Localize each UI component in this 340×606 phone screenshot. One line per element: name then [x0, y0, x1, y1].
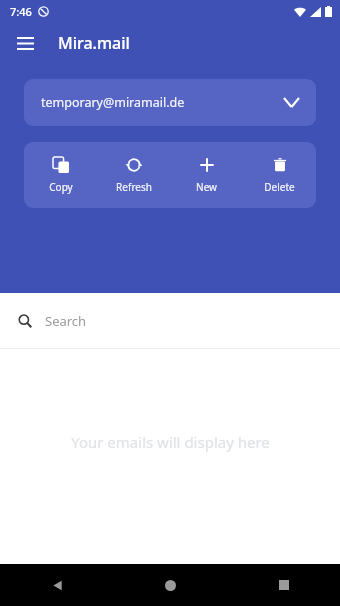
staticText: Mira.mail — [58, 32, 130, 54]
staticText: Search — [45, 312, 87, 330]
staticText: 7:46 — [10, 4, 32, 19]
staticText: New — [196, 180, 217, 194]
button[interactable]: Back — [0, 564, 114, 606]
staticText: Refresh — [116, 180, 152, 194]
button[interactable]: Search — [0, 293, 340, 348]
staticText: temporary@miramail.de — [41, 94, 284, 111]
button[interactable]: temporary@miramail.de — [24, 79, 316, 126]
staticText: Copy — [49, 180, 73, 194]
button[interactable]: New — [170, 151, 243, 200]
staticText: Your emails will display here — [71, 432, 270, 452]
button[interactable]: Delete — [243, 151, 316, 200]
button[interactable]: Refresh — [97, 151, 170, 200]
button[interactable]: Copy — [24, 151, 97, 200]
staticText: Delete — [264, 180, 295, 194]
button[interactable]: Open navigation menu — [5, 23, 45, 63]
button[interactable]: Recent apps — [227, 564, 340, 606]
button[interactable]: Home — [114, 564, 227, 606]
